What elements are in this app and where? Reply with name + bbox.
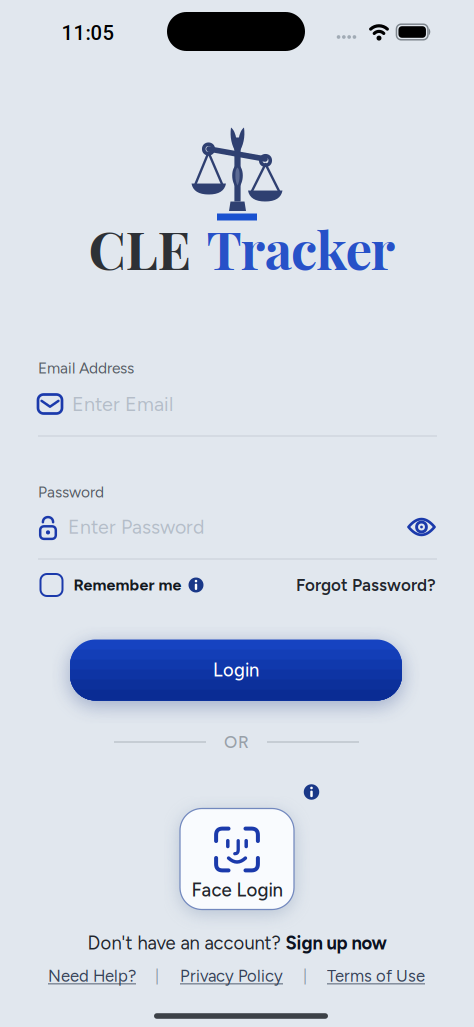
button[interactable]: Privacy Policy: [180, 966, 283, 986]
staticText: Login: [213, 659, 259, 681]
button[interactable]: Don't have an account?: [87, 932, 386, 954]
staticText: Face Login: [191, 879, 282, 901]
staticText: Need Help?: [48, 966, 136, 986]
staticText: Password: [38, 483, 104, 501]
staticText: Email Address: [38, 359, 134, 377]
button[interactable]: Login: [70, 639, 402, 700]
staticText: Enter Password: [68, 515, 204, 539]
button[interactable]: [304, 784, 319, 800]
staticText: CLE: [88, 213, 190, 283]
staticText: Forgot Password?: [296, 575, 436, 595]
button[interactable]: Enter Email: [38, 392, 436, 416]
button[interactable]: Need Help?: [48, 966, 136, 986]
staticText: Terms of Use: [327, 966, 425, 986]
staticText: Tracker: [206, 213, 396, 283]
staticText: |: [155, 966, 159, 986]
button[interactable]: Remember me: [40, 574, 203, 596]
button[interactable]: Face Login: [180, 808, 294, 909]
button[interactable]: Terms of Use: [327, 966, 425, 986]
staticText: |: [303, 966, 307, 986]
staticText: Remember me: [73, 575, 181, 595]
staticText: Enter Email: [72, 392, 173, 416]
staticText: OR: [224, 732, 249, 752]
button[interactable]: Enter Password: [39, 514, 389, 540]
staticText: Don't have an account?: [87, 932, 285, 954]
staticText: Privacy Policy: [180, 966, 283, 986]
button[interactable]: Forgot Password?: [256, 575, 436, 595]
button[interactable]: [407, 518, 436, 536]
staticText: 11:05: [61, 21, 114, 45]
staticText: Sign up now: [285, 932, 386, 954]
